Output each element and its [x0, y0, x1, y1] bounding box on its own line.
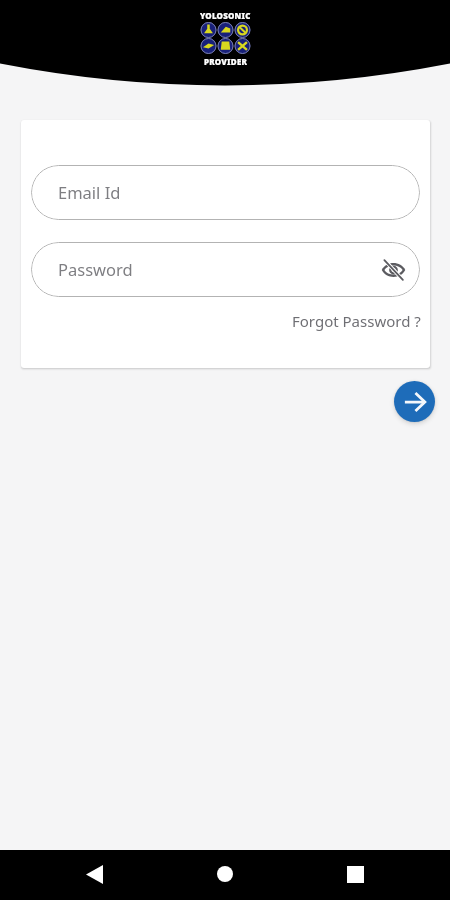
staticText: PROVIDER: [204, 56, 248, 67]
button[interactable]: Password: [31, 242, 420, 297]
button[interactable]: Email Id: [31, 165, 420, 220]
button[interactable]: Back: [74, 854, 114, 894]
button[interactable]: Forgot Password ?: [292, 311, 421, 331]
staticText: Email Id: [58, 181, 121, 203]
button[interactable]: Recent apps: [335, 854, 375, 894]
button[interactable]: Toggle password visibility: [377, 254, 409, 286]
staticText: YOLOSONIC: [200, 10, 251, 21]
button[interactable]: Sign in: [394, 381, 435, 422]
staticText: Password: [58, 258, 133, 280]
button[interactable]: Home: [205, 854, 245, 894]
